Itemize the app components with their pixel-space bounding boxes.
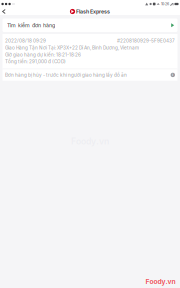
staticText: 10:26 bbox=[161, 2, 169, 6]
staticText: Tổng tiền: 291,000 đ (COD) bbox=[5, 59, 66, 64]
button[interactable]: 2022/08/18 09:29 bbox=[2, 34, 177, 81]
button[interactable]: Tìm kiếm đơn hàng bbox=[2, 18, 177, 32]
staticText: Giao Hàng Tận Nơi Tại: XP3X+22 Dĩ An, Bì… bbox=[5, 45, 139, 50]
staticText: Tìm kiếm đơn hàng bbox=[7, 22, 55, 28]
staticText: Flash Express bbox=[76, 8, 110, 15]
staticText: Foody.vn bbox=[145, 277, 175, 285]
staticText: i bbox=[172, 73, 173, 77]
staticText: Đơn hàng bị hủy - trước khi người giao h… bbox=[5, 72, 127, 78]
staticText: 2022/08/18 09:29 bbox=[5, 38, 46, 44]
staticText: Giờ giao hàng dự kiến: 18:21-18:26 bbox=[5, 52, 81, 57]
staticText: #2208180929-5F9E0437 bbox=[117, 38, 175, 44]
button[interactable]: Back bbox=[0, 8, 8, 15]
